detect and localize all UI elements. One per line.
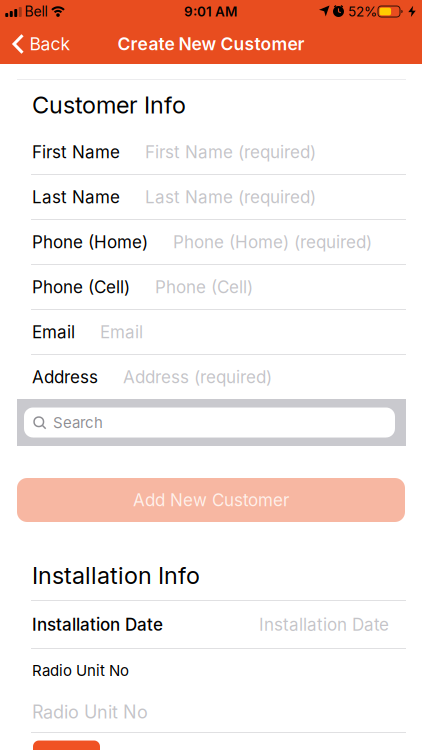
staticText: Address (required) — [123, 367, 272, 387]
staticText: Last Name (required) — [145, 187, 316, 207]
staticText: 52% — [348, 3, 377, 20]
button[interactable]: Installation Date — [0, 601, 422, 648]
button[interactable]: Back — [3, 23, 80, 65]
button[interactable]: Phone (Home) — [0, 220, 422, 264]
staticText: First Name (required) — [145, 142, 316, 162]
button[interactable]: Search — [24, 407, 395, 437]
staticText: Email — [32, 322, 75, 342]
button[interactable]: First Name — [0, 130, 422, 174]
button[interactable]: Add New Customer — [17, 478, 405, 522]
staticText: Search — [53, 413, 103, 431]
staticText: Bell — [24, 3, 47, 20]
staticText: Radio Unit No — [32, 701, 148, 723]
staticText: Installation Date — [259, 614, 389, 635]
button[interactable]: Address — [0, 355, 422, 399]
staticText: Phone (Home) (required) — [173, 232, 372, 252]
staticText: Email — [100, 322, 143, 342]
staticText: Phone (Cell) — [32, 277, 130, 297]
button[interactable]: Radio Unit No — [0, 692, 422, 732]
staticText: Customer Info — [32, 91, 186, 119]
button[interactable]: Phone (Cell) — [0, 265, 422, 309]
staticText: Phone (Cell) — [155, 277, 253, 297]
staticText: Radio Unit No — [32, 661, 129, 679]
button[interactable]: Add — [33, 740, 100, 750]
staticText: First Name — [32, 142, 120, 162]
staticText: Phone (Home) — [32, 232, 148, 252]
staticText: Installation Info — [32, 561, 200, 590]
staticText: 9:01 AM — [184, 3, 237, 20]
staticText: Installation Date — [32, 614, 163, 635]
staticText: Last Name — [32, 187, 120, 207]
staticText: Add New Customer — [133, 490, 289, 510]
staticText: Back — [29, 33, 70, 55]
staticText: Create New Customer — [117, 33, 304, 55]
button[interactable]: Last Name — [0, 175, 422, 219]
staticText: Address — [32, 367, 98, 387]
button[interactable]: Email — [0, 310, 422, 354]
